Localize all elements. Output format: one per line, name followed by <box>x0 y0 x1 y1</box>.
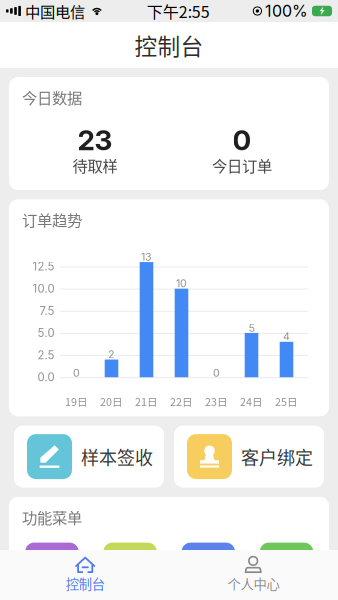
button[interactable]: 报告查询 <box>182 543 235 600</box>
staticText: 23日 <box>205 393 228 409</box>
staticText: 20日 <box>100 393 123 409</box>
staticText: 21日 <box>135 393 158 409</box>
staticText: 2 <box>108 348 115 361</box>
staticText: 0 <box>232 123 251 157</box>
staticText: 24日 <box>240 393 263 409</box>
button[interactable]: 样本管理 <box>103 543 157 600</box>
staticText: 中国电信 <box>25 0 85 22</box>
staticText: 今日数据 <box>22 86 82 108</box>
staticText: 0.0 <box>37 370 54 384</box>
staticText: 2.5 <box>37 348 54 362</box>
staticText: 个人中心 <box>227 574 279 593</box>
button[interactable]: 控制台 <box>0 550 169 600</box>
staticText: 100% <box>265 1 308 21</box>
staticText: 今日订单 <box>212 154 272 176</box>
staticText: 控制台 <box>134 29 203 61</box>
staticText: 4 <box>283 330 290 343</box>
staticText: 7.5 <box>39 304 54 318</box>
staticText: 23 <box>77 123 112 157</box>
staticText: 10 <box>176 277 187 290</box>
staticText: 5.0 <box>37 326 54 340</box>
staticText: 5 <box>248 321 254 334</box>
staticText: 12.5 <box>32 260 54 273</box>
staticText: 25日 <box>275 393 298 409</box>
staticText: 待取样 <box>72 154 117 176</box>
button[interactable]: 个人中心 <box>169 550 338 600</box>
staticText: 功能菜单 <box>22 506 82 528</box>
staticText: 控制台 <box>66 574 105 593</box>
button[interactable]: 样本签收 <box>14 426 164 488</box>
staticText: 客户绑定 <box>241 444 313 470</box>
button[interactable]: 我的客户 <box>260 543 313 600</box>
staticText: 19日 <box>65 393 88 409</box>
button[interactable]: 采样登记 <box>25 543 79 600</box>
staticText: 10.0 <box>32 282 54 295</box>
staticText: 0 <box>73 366 80 379</box>
staticText: 下午2:55 <box>147 0 210 23</box>
staticText: 订单趋势 <box>22 208 82 230</box>
button[interactable]: 客户绑定 <box>174 426 324 488</box>
staticText: 22日 <box>170 393 193 409</box>
staticText: 13 <box>141 250 152 263</box>
staticText: 样本签收 <box>81 444 153 470</box>
staticText: 0 <box>213 366 220 379</box>
